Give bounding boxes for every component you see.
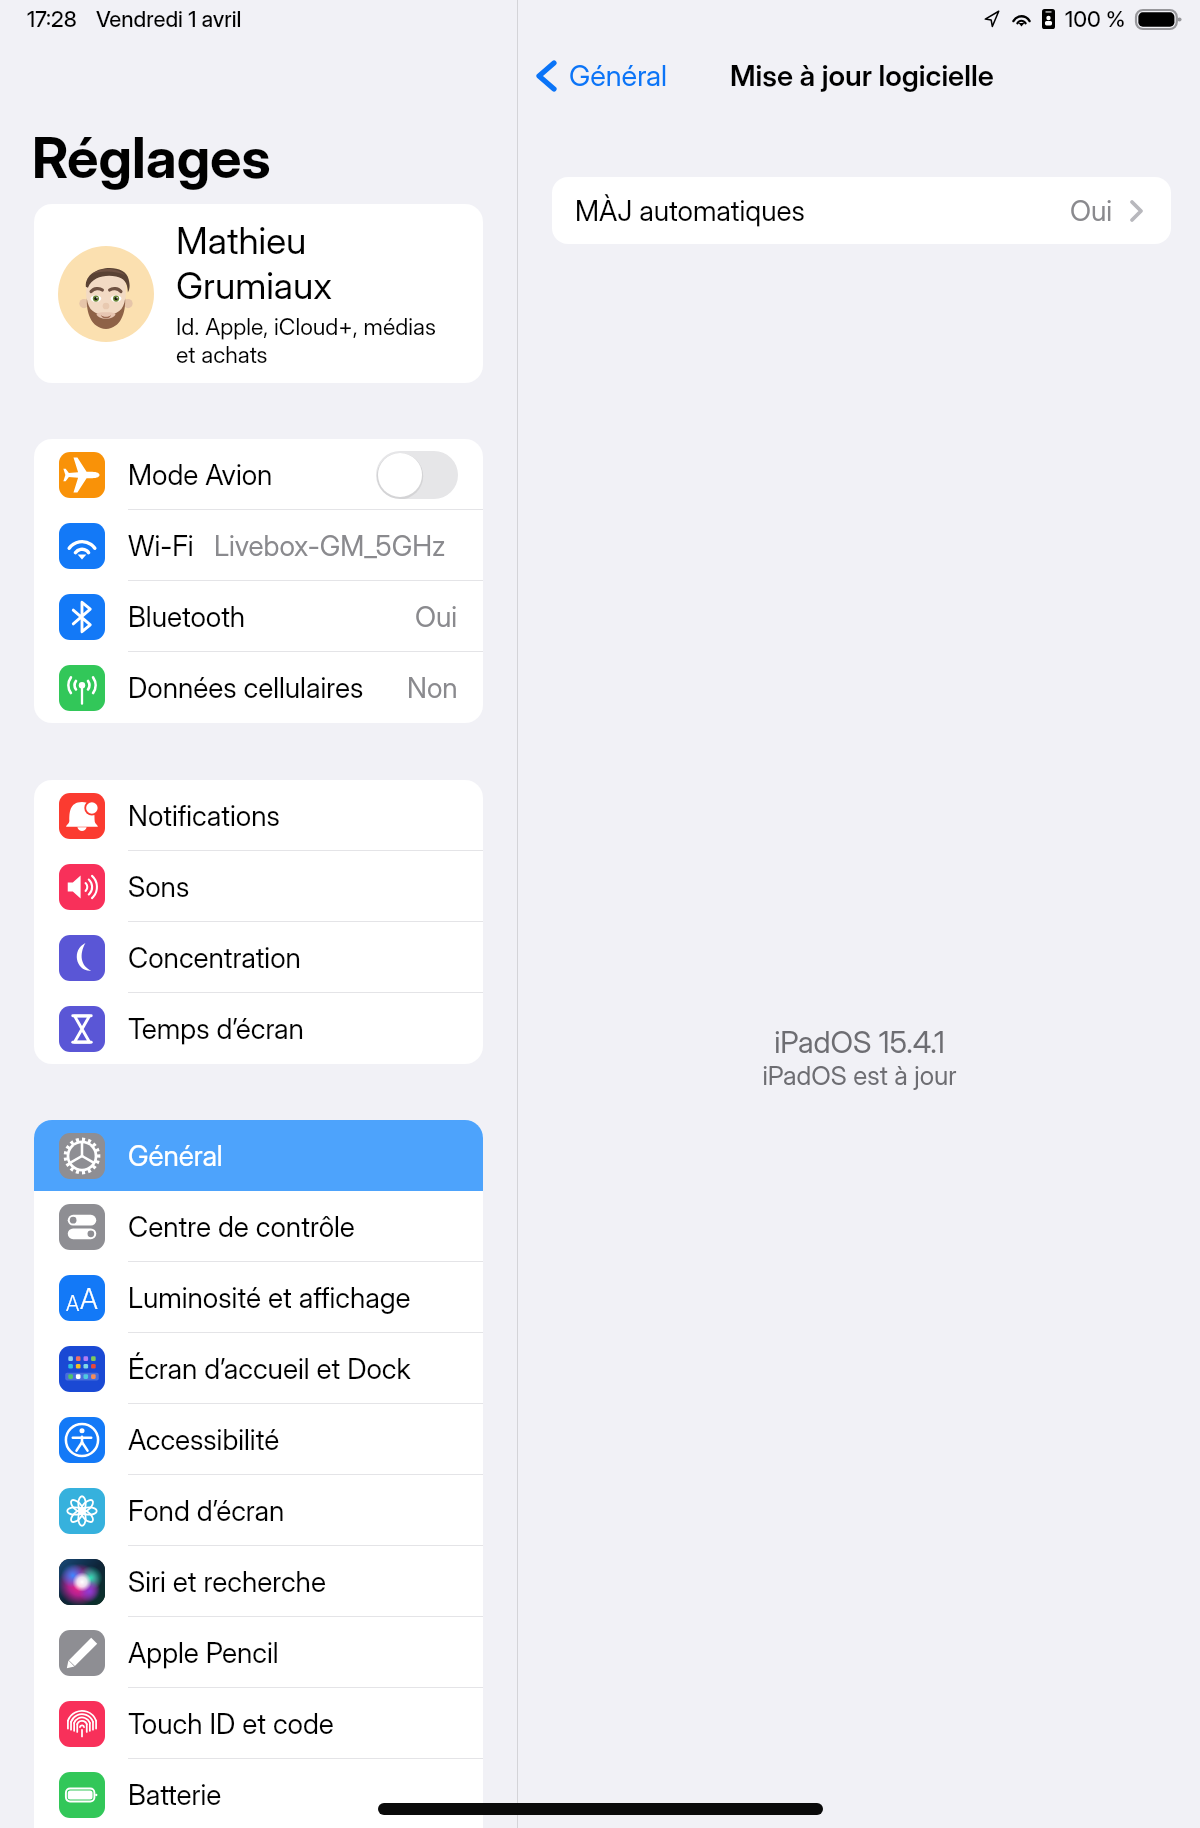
button[interactable]: Concentration <box>34 922 483 993</box>
other: Screen lock <box>1042 9 1055 29</box>
staticText: 17:28 <box>27 6 77 33</box>
staticText: MÀJ automatiques <box>575 194 805 228</box>
button[interactable]: MÀJ automatiques <box>552 177 1171 244</box>
button[interactable]: Centre de contrôle <box>34 1191 483 1262</box>
button[interactable]: Apple Pencil <box>34 1617 483 1688</box>
button[interactable]: Touch ID et code <box>34 1688 483 1759</box>
button[interactable]: A <box>34 1262 483 1333</box>
button[interactable]: Données cellulaires <box>34 652 483 723</box>
staticText: Général <box>569 58 668 93</box>
staticText: iPadOS est à jour <box>762 1060 957 1091</box>
staticText: Oui <box>1070 194 1113 228</box>
button[interactable]: Écran d’accueil et Dock <box>34 1333 483 1404</box>
staticText: Fond d’écran <box>128 1494 285 1528</box>
other: Location <box>984 9 1000 28</box>
staticText: Sons <box>128 870 190 904</box>
staticText: Temps d’écran <box>128 1012 304 1046</box>
button[interactable]: Wi-Fi <box>34 510 483 581</box>
staticText: A <box>66 1291 80 1316</box>
staticText: Grumiaux <box>176 263 332 308</box>
button[interactable]: Notifications <box>34 780 483 851</box>
staticText: 100 % <box>1065 6 1126 33</box>
staticText: Batterie <box>128 1778 222 1812</box>
staticText: Mode Avion <box>128 458 273 492</box>
button[interactable]: Sons <box>34 851 483 922</box>
staticText: Mathieu <box>176 218 307 263</box>
staticText: A <box>80 1282 98 1316</box>
staticText: Mise à jour logicielle <box>730 58 994 93</box>
button[interactable]: Fond d’écran <box>34 1475 483 1546</box>
staticText: Réglages <box>32 124 271 192</box>
button[interactable]: Mathieu <box>34 204 483 383</box>
button[interactable]: Général <box>537 58 668 93</box>
button[interactable]: Temps d’écran <box>34 993 483 1064</box>
button[interactable]: Général <box>34 1120 483 1191</box>
staticText: Livebox-GM_5GHz <box>214 529 446 563</box>
button[interactable]: Batterie <box>34 1759 483 1828</box>
staticText: Siri et recherche <box>128 1565 326 1599</box>
button[interactable]: Mode Avion <box>376 451 458 499</box>
staticText: Id. Apple, iCloud+, médias <box>176 313 436 341</box>
staticText: iPadOS 15.4.1 <box>774 1024 945 1060</box>
button[interactable]: Mode Avion <box>34 439 483 510</box>
staticText: Général <box>128 1139 223 1173</box>
staticText: Centre de contrôle <box>128 1210 355 1244</box>
staticText: Apple Pencil <box>128 1636 279 1670</box>
button[interactable]: Siri et recherche <box>34 1546 483 1617</box>
button[interactable]: Bluetooth <box>34 581 483 652</box>
staticText: Concentration <box>128 941 301 975</box>
staticText: Wi-Fi <box>128 529 194 563</box>
staticText: et achats <box>176 341 268 369</box>
staticText: Luminosité et affichage <box>128 1281 411 1315</box>
staticText: Écran d’accueil et Dock <box>128 1352 411 1386</box>
staticText: Accessibilité <box>128 1423 280 1457</box>
staticText: Touch ID et code <box>128 1707 334 1741</box>
staticText: Vendredi 1 avril <box>96 6 242 33</box>
other: Wi-Fi <box>1010 10 1033 28</box>
staticText: Notifications <box>128 799 280 833</box>
staticText: Non <box>407 671 458 705</box>
staticText: Bluetooth <box>128 600 246 634</box>
other: Battery <box>1135 9 1181 30</box>
staticText: Oui <box>415 600 458 634</box>
button[interactable]: Accessibilité <box>34 1404 483 1475</box>
staticText: Données cellulaires <box>128 671 364 705</box>
